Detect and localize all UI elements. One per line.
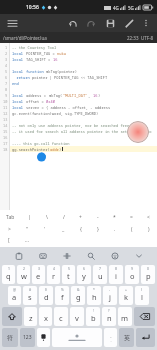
button[interactable]: ( — [135, 286, 149, 305]
button[interactable]: 4 — [47, 265, 60, 284]
staticText: 3 — [5, 57, 8, 62]
button[interactable]: v — [70, 307, 84, 326]
button[interactable]: Collapse — [127, 247, 151, 264]
button[interactable]: } — [89, 223, 106, 235]
button[interactable]: English — [119, 328, 134, 347]
button[interactable]: & — [71, 286, 85, 305]
button[interactable]: _ — [54, 223, 72, 235]
button[interactable]: / — [55, 211, 72, 223]
staticText: 4G — [113, 5, 119, 11]
staticText: 11 — [3, 105, 8, 110]
button[interactable]: More options — [140, 17, 152, 29]
button[interactable]: ) — [140, 223, 157, 235]
button[interactable]: @ — [8, 286, 21, 305]
button[interactable]: ? — [102, 307, 116, 326]
staticText: local — [12, 57, 26, 62]
button[interactable]: x — [39, 307, 52, 326]
button[interactable]: = — [123, 211, 140, 223]
button[interactable]: > — [0, 223, 18, 235]
button[interactable]: . — [106, 223, 123, 235]
staticText: i — [115, 271, 117, 281]
staticText: 4 — [53, 266, 55, 271]
button[interactable]: ! — [86, 307, 100, 326]
button[interactable]: Tab — [0, 211, 20, 223]
button[interactable]: 8 — [109, 265, 123, 284]
staticText: u — [98, 271, 103, 281]
button[interactable]: Space — [52, 328, 102, 347]
button[interactable]: z — [24, 307, 37, 326]
button[interactable]: 9 — [125, 265, 139, 284]
button[interactable]: Clipboard — [6, 247, 31, 264]
button[interactable]: m — [118, 307, 132, 326]
button[interactable]: Undo — [65, 16, 79, 30]
staticText: offset = — [26, 99, 46, 104]
staticText: n — [107, 313, 112, 323]
staticText: g — [76, 292, 81, 302]
staticText: 7 — [99, 266, 101, 271]
button[interactable]: + — [119, 286, 133, 305]
button[interactable]: Save — [103, 16, 117, 30]
staticText: 12 — [3, 111, 8, 116]
button[interactable]: | — [20, 211, 38, 223]
button[interactable]: [ — [0, 235, 18, 246]
button[interactable]: 6 — [77, 265, 91, 284]
staticText: 3 — [38, 266, 40, 271]
button[interactable]: Edit — [122, 16, 136, 30]
button[interactable]: ... — [18, 235, 36, 246]
staticText: w — [21, 271, 27, 281]
staticText: "MULTI_DAT" — [63, 93, 88, 98]
button[interactable]: { — [72, 223, 89, 235]
button[interactable]: ( — [123, 223, 140, 235]
button[interactable]: " — [18, 223, 36, 235]
button[interactable]: Emoji — [103, 247, 127, 264]
staticText: @ — [13, 287, 17, 292]
button[interactable]: c — [54, 307, 68, 326]
staticText: 4 — [5, 63, 8, 68]
staticText: local — [12, 105, 26, 110]
button[interactable]: Run — [127, 121, 149, 143]
staticText: 16 — [93, 93, 98, 98]
button[interactable]: # — [23, 286, 37, 305]
button[interactable]: < — [140, 211, 157, 223]
button[interactable]: Comma period — [104, 328, 117, 347]
button[interactable]: 2 — [17, 265, 30, 284]
staticText: POINTER_TAG = — [26, 51, 57, 56]
button[interactable]: Backspace — [134, 307, 155, 326]
button[interactable]: Numbers — [20, 328, 35, 347]
button[interactable]: ' — [36, 223, 54, 235]
button[interactable]: 0 — [141, 265, 155, 284]
button[interactable]: 7 — [93, 265, 107, 284]
button[interactable]: 5 — [62, 265, 75, 284]
button[interactable]: Menu — [5, 16, 19, 30]
button[interactable]: Switch keyboard — [37, 328, 50, 347]
button[interactable]: Shift — [2, 307, 22, 326]
staticText: 8 — [115, 266, 117, 271]
button[interactable]: + — [72, 211, 89, 223]
button[interactable]: Enter — [136, 328, 155, 347]
staticText: server = — [26, 105, 46, 110]
button[interactable]: Search — [79, 247, 103, 264]
staticText: TAG_SHIFT = — [26, 57, 53, 62]
staticText: j — [109, 292, 111, 302]
button[interactable]: * — [106, 211, 123, 223]
button[interactable]: - — [89, 211, 106, 223]
button[interactable]: Settings — [55, 247, 79, 264]
button[interactable]: $ — [39, 286, 53, 305]
button[interactable]: Symbols — [2, 328, 18, 347]
staticText: ... — [25, 237, 30, 244]
button[interactable]: 1 — [2, 265, 15, 284]
staticText: " — [26, 226, 29, 233]
staticText: k — [124, 292, 129, 302]
button[interactable]: % — [55, 286, 69, 305]
button[interactable]: - — [103, 286, 117, 305]
button[interactable]: Redo — [84, 16, 98, 30]
staticText: return — [12, 75, 32, 80]
button[interactable]: 3 — [32, 265, 45, 284]
staticText: 1 — [5, 45, 8, 50]
staticText: gc.event(function(word, sig.TYPE_DWORD) — [12, 111, 99, 116]
staticText: ---- this go-call function — [12, 141, 70, 146]
button[interactable]: * — [87, 286, 101, 305]
button[interactable]: \ — [38, 211, 55, 223]
button[interactable]: Stickers — [31, 247, 55, 264]
staticText: f — [61, 292, 64, 302]
